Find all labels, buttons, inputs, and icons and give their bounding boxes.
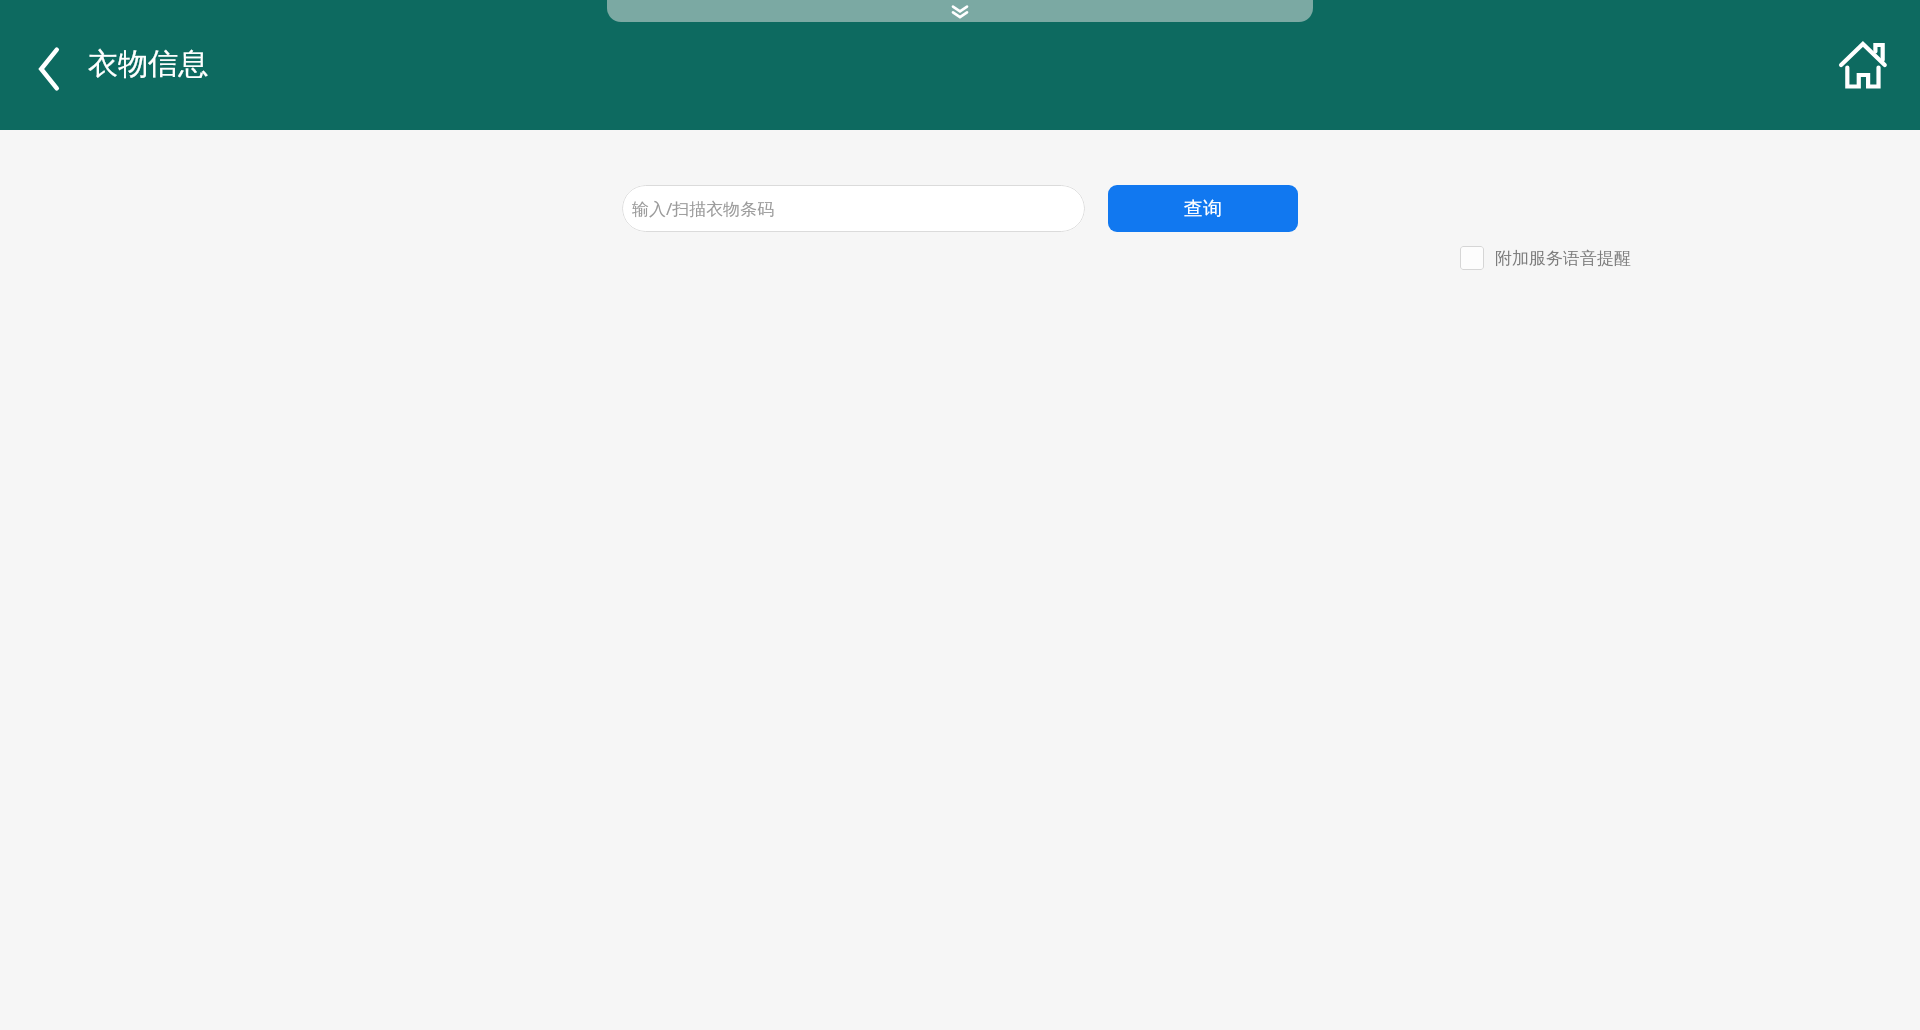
staticText: 附加服务语音提醒	[1495, 248, 1631, 269]
button[interactable]: Home	[1832, 32, 1898, 98]
staticText: 输入/扫描衣物条码	[632, 197, 775, 220]
button[interactable]: 输入/扫描衣物条码	[622, 185, 1085, 232]
button[interactable]: 查询	[1108, 185, 1298, 232]
button[interactable]: Back	[20, 40, 78, 98]
button[interactable]: Expand notifications	[607, 0, 1313, 22]
staticText: 查询	[1184, 197, 1222, 221]
button[interactable]: 附加服务语音提醒	[1452, 240, 1639, 276]
staticText: 衣物信息	[88, 45, 208, 83]
